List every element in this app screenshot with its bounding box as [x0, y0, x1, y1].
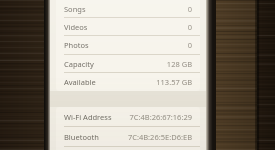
other: Phone edge: [206, 0, 216, 150]
staticText: Bluetooth: [64, 132, 127, 142]
staticText: 7C:4B:26:5E:D6:EB: [127, 132, 192, 142]
staticText: Wi-Fi Address: [64, 112, 129, 122]
button[interactable]: Bluetooth: [56, 127, 200, 147]
button[interactable]: Capacity: [56, 55, 200, 73]
button[interactable]: Photos: [56, 36, 200, 55]
staticText: 128 GB: [166, 59, 192, 69]
button[interactable]: Videos: [56, 18, 200, 36]
staticText: 0: [187, 40, 192, 50]
staticText: Photos: [64, 40, 187, 50]
staticText: Available: [64, 77, 156, 87]
button[interactable]: Wi-Fi Address: [56, 107, 200, 127]
staticText: Songs: [64, 4, 187, 14]
staticText: Videos: [64, 22, 187, 32]
button[interactable]: Available: [56, 73, 200, 91]
staticText: 7C:4B:26:67:16:29: [129, 112, 192, 122]
button[interactable]: Songs: [56, 0, 200, 18]
staticText: 0: [187, 22, 192, 32]
staticText: 0: [187, 4, 192, 14]
staticText: 113.57 GB: [156, 77, 192, 87]
staticText: Capacity: [64, 59, 166, 69]
